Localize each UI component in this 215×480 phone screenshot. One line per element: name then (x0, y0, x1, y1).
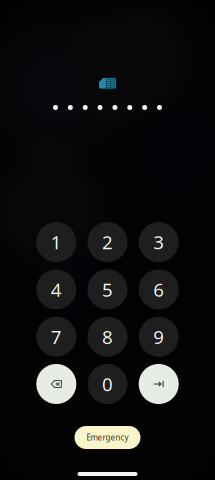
staticText: Emergency (86, 432, 128, 443)
staticText: 5 (102, 277, 113, 302)
button[interactable]: 7 (36, 317, 76, 357)
staticText: 8 (102, 324, 113, 349)
staticText: 1 (51, 230, 62, 254)
staticText: 3 (153, 230, 164, 254)
staticText: 9 (153, 324, 164, 349)
staticText: 6 (153, 277, 164, 302)
button[interactable]: 8 (87, 317, 127, 357)
staticText: 0 (102, 372, 113, 396)
button[interactable]: Enter (139, 364, 179, 404)
button[interactable]: 6 (139, 269, 179, 309)
button[interactable]: 1 (36, 222, 76, 262)
button[interactable]: 3 (139, 222, 179, 262)
button[interactable]: 5 (87, 269, 127, 309)
button[interactable]: 2 (87, 222, 127, 262)
button[interactable]: 4 (36, 269, 76, 309)
button[interactable]: 0 (87, 364, 127, 404)
button[interactable]: Delete (36, 364, 76, 404)
staticText: 7 (51, 324, 62, 349)
button[interactable]: 9 (139, 317, 179, 357)
staticText: 4 (51, 277, 62, 302)
staticText: 2 (102, 230, 113, 254)
button[interactable]: Emergency (74, 426, 140, 449)
